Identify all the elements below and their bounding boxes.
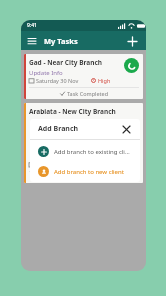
staticText: Gad - Near City Branch bbox=[29, 58, 102, 67]
staticText: High bbox=[98, 77, 111, 84]
button[interactable]: Arabiata - New City Branch bbox=[24, 103, 143, 183]
button[interactable]: Add branch to new client bbox=[30, 163, 140, 180]
button[interactable]: Close bbox=[120, 123, 132, 135]
staticText: Saturday 30 Nov bbox=[36, 161, 79, 168]
button[interactable]: Add branch to existing client bbox=[30, 143, 140, 160]
button[interactable]: Task Completed bbox=[29, 172, 139, 183]
staticText: Add Branch bbox=[38, 124, 79, 134]
staticText: My Tasks bbox=[44, 36, 78, 46]
button[interactable]: Add bbox=[125, 34, 139, 48]
staticText: Saturday 30 Nov bbox=[36, 77, 79, 84]
button[interactable]: Task Completed bbox=[29, 88, 139, 99]
staticText: Update Info bbox=[29, 69, 63, 77]
staticText: Task Completed bbox=[67, 90, 109, 97]
staticText: Add branch to new client bbox=[54, 168, 124, 176]
button[interactable]: Gad - Near City Branch bbox=[24, 54, 143, 99]
staticText: 9:41 bbox=[27, 22, 37, 29]
button[interactable]: Call bbox=[124, 58, 139, 73]
staticText: Arabiata - New City Branch bbox=[29, 107, 116, 116]
button[interactable]: Menu bbox=[28, 35, 40, 47]
staticText: Add branch to existing client bbox=[54, 148, 132, 156]
